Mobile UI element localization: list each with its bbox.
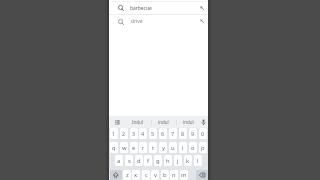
staticText: 7 (171, 130, 175, 137)
button[interactable]: c (142, 170, 150, 180)
staticText: 2 (122, 130, 126, 137)
button[interactable]: 4 (139, 128, 147, 139)
button[interactable]: d (135, 155, 143, 166)
staticText: Indul (132, 119, 144, 125)
button[interactable]: u (169, 142, 177, 153)
staticText: 1 (112, 130, 116, 137)
staticText: z (126, 171, 129, 179)
button[interactable]: 7 (169, 128, 177, 139)
staticText: l (197, 157, 199, 165)
button[interactable]: indul (177, 116, 199, 128)
button[interactable]: barbecue (109, 2, 208, 14)
staticText: k (186, 157, 190, 165)
button[interactable]: i (179, 142, 187, 153)
staticText: u (171, 144, 175, 152)
button[interactable]: drive (109, 15, 208, 27)
button[interactable]: 5 (149, 128, 157, 139)
button[interactable]: 9 (189, 128, 197, 139)
button[interactable]: o (189, 142, 197, 153)
staticText: 8 (181, 130, 185, 137)
staticText: indul (158, 119, 169, 125)
button[interactable]: n (170, 170, 178, 180)
button[interactable]: z (123, 170, 131, 180)
staticText: c (145, 171, 148, 179)
staticText: j (177, 157, 179, 165)
staticText: q (112, 144, 116, 152)
staticText: x (134, 171, 138, 179)
button[interactable]: e (130, 142, 138, 153)
staticText: 3 (132, 130, 136, 137)
staticText: h (166, 157, 170, 165)
staticText: n (172, 171, 176, 179)
button[interactable]: 6 (159, 128, 167, 139)
staticText: 9 (191, 130, 195, 137)
staticText: e (132, 144, 136, 152)
staticText: y (162, 144, 165, 152)
staticText: a (117, 157, 121, 165)
button[interactable]: 1 (110, 128, 118, 139)
staticText: 5 (151, 130, 155, 137)
staticText: s (128, 157, 131, 165)
button[interactable]: r (139, 142, 147, 153)
button[interactable]: k (184, 155, 192, 166)
staticText: f (147, 157, 149, 165)
button[interactable]: b (161, 170, 169, 180)
button[interactable]: v (151, 170, 159, 180)
staticText: o (191, 144, 195, 152)
staticText: indul (183, 119, 194, 125)
staticText: 0 (201, 130, 205, 137)
staticText: 6 (161, 130, 165, 137)
button[interactable]: 3 (130, 128, 138, 139)
button[interactable]: h (164, 155, 172, 166)
button[interactable]: t (149, 142, 157, 153)
staticText: w (122, 144, 127, 152)
button[interactable]: indul (152, 116, 174, 128)
button[interactable]: w (120, 142, 128, 153)
staticText: d (137, 157, 141, 165)
button[interactable]: j (174, 155, 182, 166)
staticText: g (156, 157, 160, 165)
button[interactable]: m (180, 170, 188, 180)
button[interactable]: q (110, 142, 118, 153)
button[interactable]: 0 (199, 128, 207, 139)
button[interactable] (201, 119, 206, 126)
button[interactable]: l (194, 155, 202, 166)
button[interactable]: a (115, 155, 123, 166)
staticText: t (152, 144, 155, 152)
staticText: drive (131, 18, 143, 25)
button[interactable]: x (132, 170, 140, 180)
button[interactable]: f (144, 155, 152, 166)
button[interactable]: Indul (127, 116, 149, 128)
button[interactable]: 2 (120, 128, 128, 139)
staticText: v (154, 171, 157, 179)
staticText: i (182, 144, 184, 152)
staticText: 4 (141, 130, 145, 137)
button[interactable] (196, 170, 208, 180)
button[interactable]: s (125, 155, 133, 166)
button[interactable]: p (199, 142, 207, 153)
staticText: m (181, 171, 187, 179)
button[interactable]: 8 (179, 128, 187, 139)
staticText: b (163, 171, 167, 179)
button[interactable] (110, 170, 122, 180)
staticText: barbecue (130, 5, 152, 12)
staticText: r (142, 144, 145, 152)
button[interactable]: y (159, 142, 167, 153)
staticText: p (201, 144, 205, 152)
button[interactable]: g (154, 155, 162, 166)
